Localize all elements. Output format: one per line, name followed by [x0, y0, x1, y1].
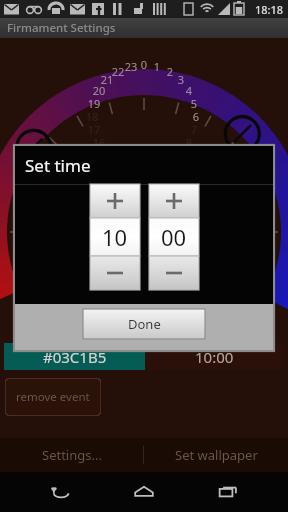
button[interactable]: Settings...	[0, 438, 143, 472]
button[interactable]: Set wallpaper	[144, 438, 288, 472]
button[interactable]: remove event	[5, 378, 101, 416]
staticText: 19	[87, 96, 101, 111]
staticText: #03C1B5	[43, 347, 107, 367]
staticText: 21	[100, 72, 114, 87]
staticText: 17	[87, 122, 101, 137]
button[interactable]: Increment	[149, 184, 199, 218]
staticText: 8	[182, 135, 196, 150]
staticText: 22	[111, 64, 125, 79]
staticText: 10:00	[195, 347, 234, 367]
button[interactable]: Back	[36, 472, 84, 512]
button[interactable]: 10:00	[145, 343, 284, 370]
button[interactable]: Increment	[90, 184, 140, 218]
button[interactable]: Recent apps	[204, 472, 252, 512]
staticText: Settings...	[42, 446, 102, 464]
staticText: 10	[102, 222, 128, 252]
staticText: 18	[85, 109, 99, 124]
staticText: Set time	[25, 154, 91, 177]
button[interactable]: Decrement	[90, 256, 140, 290]
button[interactable]: #03C1B5	[4, 343, 145, 370]
staticText: 16	[92, 135, 106, 150]
staticText: Set wallpaper	[175, 446, 258, 464]
staticText: 7	[187, 122, 201, 137]
staticText: 18:18	[255, 2, 284, 17]
staticText: Done	[128, 315, 161, 333]
staticText: 23	[124, 59, 138, 74]
button[interactable]: Decrement	[149, 256, 199, 290]
staticText: 2	[163, 64, 177, 79]
staticText: Firmament Settings	[7, 20, 116, 36]
staticText: remove event	[16, 389, 90, 405]
staticText: 1	[150, 59, 164, 74]
staticText: 6	[189, 109, 203, 124]
staticText: 5	[187, 96, 201, 111]
staticText: 4	[182, 83, 196, 98]
staticText: 20	[92, 83, 106, 98]
button[interactable]: Home	[120, 472, 168, 512]
staticText: 0	[137, 57, 151, 72]
staticText: 3	[174, 72, 188, 87]
button[interactable]: Done	[83, 309, 205, 339]
staticText: 00	[161, 222, 187, 252]
